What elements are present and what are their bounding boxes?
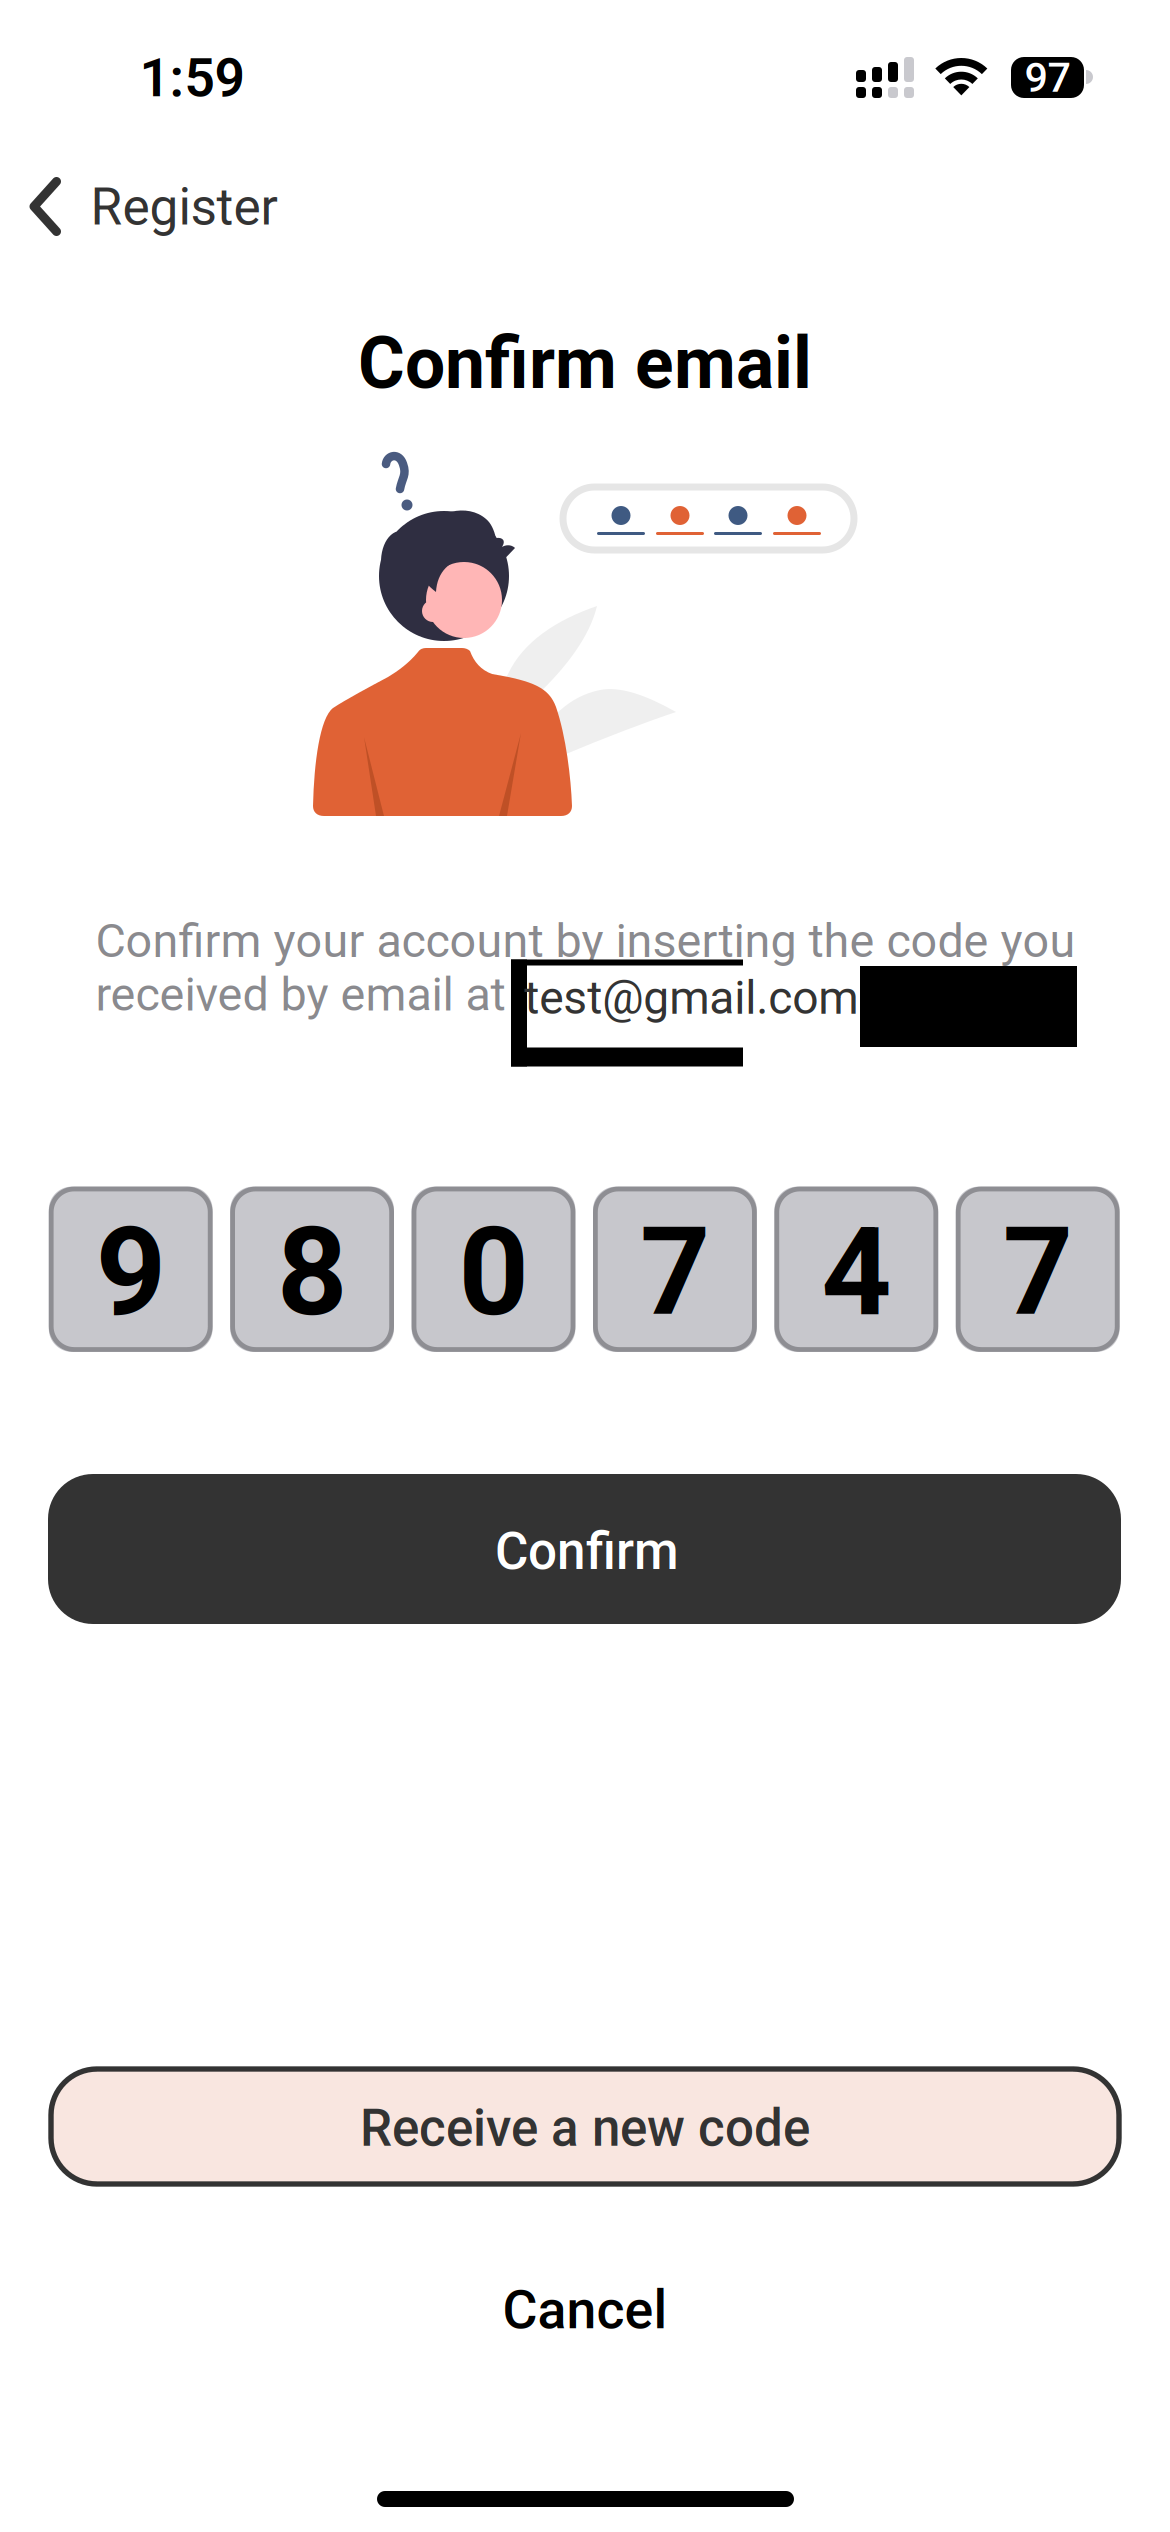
button[interactable]: Receive a new code [51,2069,1119,2184]
staticText: 0 [458,1200,528,1344]
button[interactable]: Confirm [48,1474,1121,1624]
staticText: Confirm email [358,322,812,405]
staticText: Cancel [502,2279,667,2341]
staticText: test@gmail.com [524,971,858,1025]
button[interactable]: 9 [49,1187,213,1352]
button[interactable]: 4 [774,1187,938,1352]
staticText: 4 [821,1200,891,1344]
staticText: 7 [1003,1200,1073,1344]
button[interactable]: 7 [593,1187,757,1352]
button[interactable]: 0 [412,1187,575,1352]
staticText: received by email at [95,967,505,1022]
staticText: Register [90,177,277,237]
staticText: Confirm [495,1521,679,1581]
button[interactable]: Register [0,150,300,254]
button[interactable]: Cancel [385,2270,785,2350]
staticText: 7 [640,1200,710,1344]
staticText: 1:59 [139,47,244,109]
button[interactable]: 8 [230,1187,394,1352]
staticText: 9 [96,1200,166,1344]
staticText: Confirm your account by inserting the co… [95,914,1075,968]
button[interactable]: 7 [956,1187,1120,1352]
staticText: 8 [277,1200,347,1344]
staticText: Receive a new code [360,2098,810,2158]
staticText: 97 [1024,53,1070,102]
